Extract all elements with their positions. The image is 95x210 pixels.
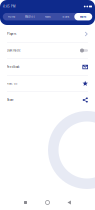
staticText: Dark mode [7,49,21,52]
staticText: More [80,15,87,18]
staticText: Matches [25,15,35,18]
button[interactable]: Dark mode [3,42,92,58]
button[interactable]: Home [3,13,21,20]
button[interactable]: Home [36,196,58,209]
staticText: Players [7,32,16,36]
button[interactable]: Players [3,26,92,42]
button[interactable]: Rate us [3,75,92,91]
button[interactable]: Matches [21,13,39,20]
staticText: Feedback [7,65,19,69]
button[interactable]: Share [3,92,92,108]
staticText: Home [8,15,16,18]
button[interactable]: Teams [56,13,74,20]
button[interactable]: More [74,13,92,20]
button[interactable]: Recents [14,196,36,209]
staticText: Teams [62,15,69,18]
staticText: 4:45 PM [3,5,15,8]
button[interactable]: Back [58,196,80,209]
staticText: Share [7,98,14,102]
button[interactable]: News [39,13,56,20]
button[interactable]: Feedback [3,59,92,75]
staticText: News [44,15,50,18]
staticText: Rate us [7,82,17,85]
